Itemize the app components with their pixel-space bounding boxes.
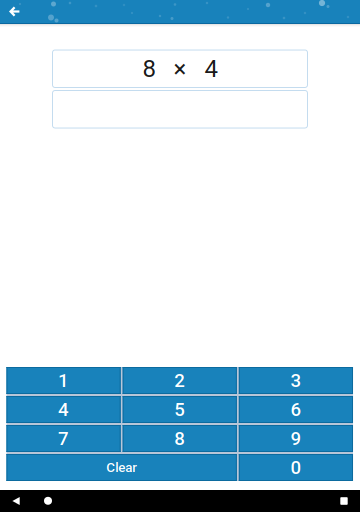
button[interactable]: 9	[239, 425, 353, 452]
button[interactable]: Home	[35, 490, 61, 512]
button[interactable]: Navigate up	[0, 0, 28, 23]
staticText: 6	[290, 399, 301, 420]
staticText: 2	[174, 370, 185, 391]
staticText: 8	[174, 428, 185, 449]
staticText: 0	[290, 457, 301, 478]
staticText: 9	[290, 428, 301, 449]
button[interactable]: 7	[6, 425, 121, 452]
staticText: 3	[290, 370, 301, 391]
button[interactable]: 1	[6, 367, 121, 394]
button[interactable]: Back	[3, 490, 29, 512]
staticText: 7	[58, 428, 69, 449]
button[interactable]: 0	[239, 454, 353, 481]
button[interactable]: Clear	[6, 454, 237, 481]
staticText: 8 × 4	[142, 55, 217, 83]
button[interactable]: Recent apps	[331, 490, 357, 512]
staticText: 4	[58, 399, 69, 420]
staticText: 1	[58, 370, 69, 391]
button[interactable]: 2	[123, 367, 237, 394]
staticText: 5	[174, 399, 185, 420]
button[interactable]: 5	[123, 396, 237, 423]
button[interactable]: 6	[239, 396, 353, 423]
button[interactable]: 8	[123, 425, 237, 452]
button[interactable]: 4	[6, 396, 121, 423]
staticText: Clear	[106, 460, 137, 475]
button[interactable]: 3	[239, 367, 353, 394]
